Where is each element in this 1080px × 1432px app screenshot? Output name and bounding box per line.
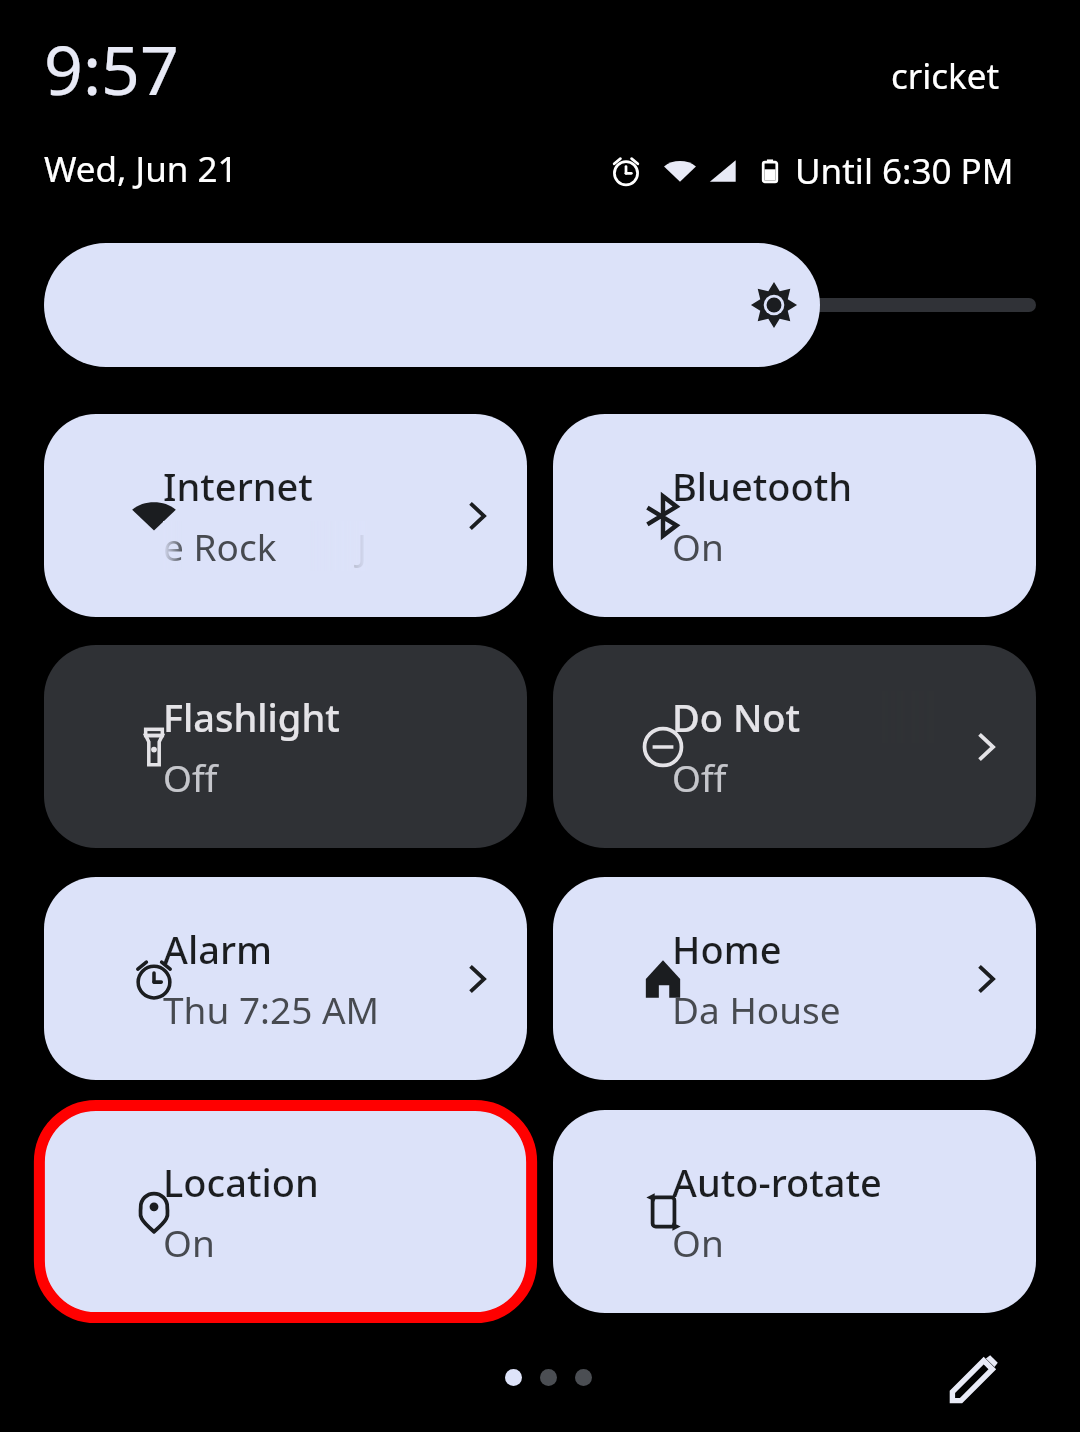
button[interactable]: Brightness [44,243,1036,367]
button[interactable]: Do Not Disturb [553,645,1036,848]
button[interactable]: Location [44,1110,527,1313]
staticText: Internet [163,460,313,512]
staticText: e Rock [163,521,277,571]
staticText: Alarm [163,923,272,975]
staticText: Auto-rotate [672,1156,882,1208]
button[interactable]: Alarm [44,877,527,1080]
button[interactable]: Edit tiles [932,1337,1016,1421]
button[interactable]: Bluetooth [553,414,1036,617]
staticText: On [672,521,724,571]
staticText: Location [163,1156,319,1208]
staticText: Bluetooth [672,460,853,512]
staticText: J [357,521,368,571]
button[interactable]: Auto-rotate [553,1110,1036,1313]
button[interactable]: Flashlight [44,645,527,848]
staticText: Off [672,752,727,802]
staticText: Home [672,923,782,975]
staticText: Da House [672,984,841,1034]
staticText: Wed, Jun 21 [44,145,238,193]
staticText: Flashlight [163,691,340,743]
button[interactable]: Home [553,877,1036,1080]
staticText: On [163,1217,215,1267]
staticText: On [672,1217,724,1267]
staticText: cricket [891,52,1000,100]
staticText: Until 6:30 PM [795,147,1014,195]
staticText: Do Not Disturb [672,691,934,743]
staticText: 9:57 [44,22,179,115]
button[interactable]: Internet [44,414,527,617]
staticText: Thu 7:25 AM [163,984,380,1034]
staticText: Off [163,752,218,802]
